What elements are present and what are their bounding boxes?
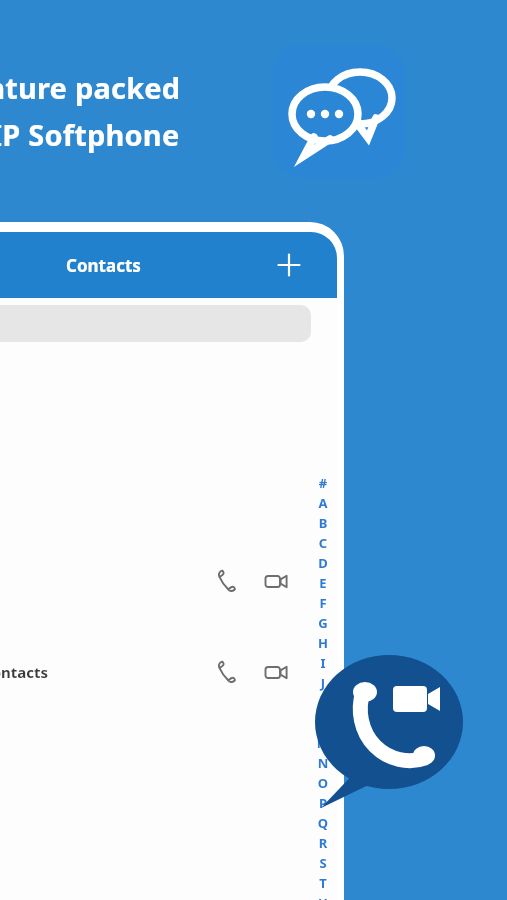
staticText: B bbox=[313, 514, 333, 534]
staticText: I bbox=[313, 654, 333, 674]
staticText: D bbox=[313, 554, 333, 574]
staticText: R bbox=[313, 834, 333, 854]
staticText: U bbox=[313, 894, 333, 900]
staticText: T bbox=[313, 874, 333, 894]
staticText: Feature packed bbox=[0, 68, 181, 107]
staticText: L bbox=[313, 714, 333, 734]
staticText: Contacts bbox=[66, 254, 141, 277]
staticText: J bbox=[313, 674, 333, 694]
button[interactable]: Contacts bbox=[0, 643, 337, 701]
staticText: C bbox=[313, 534, 333, 554]
button[interactable]: App icon bbox=[272, 44, 406, 178]
staticText: F bbox=[313, 594, 333, 614]
staticText: P bbox=[313, 794, 333, 814]
staticText: N bbox=[313, 754, 333, 774]
button[interactable]: Call bbox=[209, 655, 243, 689]
button[interactable]: Video call bbox=[259, 564, 293, 598]
staticText: Contacts bbox=[0, 662, 49, 682]
staticText: A bbox=[313, 494, 333, 514]
staticText: O bbox=[313, 774, 333, 794]
staticText: # bbox=[313, 474, 333, 494]
staticText: M bbox=[313, 734, 333, 754]
button[interactable]: Call bbox=[209, 564, 243, 598]
staticText: K bbox=[313, 694, 333, 714]
staticText: G bbox=[313, 614, 333, 634]
staticText: E bbox=[313, 574, 333, 594]
staticText: Q bbox=[313, 814, 333, 834]
button[interactable]: New call bbox=[313, 648, 465, 812]
staticText: S bbox=[313, 854, 333, 874]
button[interactable]: Add contact bbox=[269, 245, 309, 285]
staticText: H bbox=[313, 634, 333, 654]
button[interactable]: Video call bbox=[259, 655, 293, 689]
button[interactable]: Alphabet index bbox=[313, 474, 333, 900]
staticText: VoIP Softphone bbox=[0, 115, 180, 154]
button[interactable]: Call bbox=[0, 552, 337, 610]
